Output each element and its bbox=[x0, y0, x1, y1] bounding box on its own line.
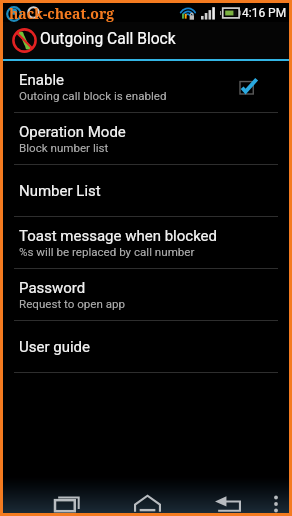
button[interactable]: More options bbox=[270, 495, 282, 513]
button[interactable]: Enable bbox=[3, 61, 289, 112]
staticText: Operation Mode bbox=[19, 123, 126, 141]
button[interactable]: Number List bbox=[3, 165, 289, 216]
button[interactable]: Home bbox=[134, 495, 161, 512]
staticText: hack-cheat.org bbox=[9, 4, 115, 23]
staticText: Enable bbox=[19, 71, 64, 89]
staticText: Toast message when blocked bbox=[19, 227, 217, 245]
staticText: Password bbox=[19, 279, 86, 297]
staticText: Request to open app bbox=[19, 297, 126, 311]
staticText: Outgoing Call Block bbox=[40, 30, 176, 48]
staticText: Block number list bbox=[19, 141, 109, 155]
button[interactable]: Operation Mode bbox=[3, 113, 289, 164]
button[interactable]: Password bbox=[3, 269, 289, 320]
staticText: Outoing call block is enabled bbox=[19, 89, 167, 103]
button[interactable]: User guide bbox=[3, 321, 289, 372]
staticText: 4:16 PM bbox=[242, 6, 287, 20]
button[interactable]: Back bbox=[215, 496, 241, 512]
staticText: Number List bbox=[19, 182, 101, 200]
button[interactable]: Toast message when blocked bbox=[3, 217, 289, 268]
staticText: User guide bbox=[19, 338, 90, 356]
button[interactable]: Recents bbox=[54, 496, 80, 512]
staticText: %s will be replaced by call number bbox=[19, 245, 195, 259]
